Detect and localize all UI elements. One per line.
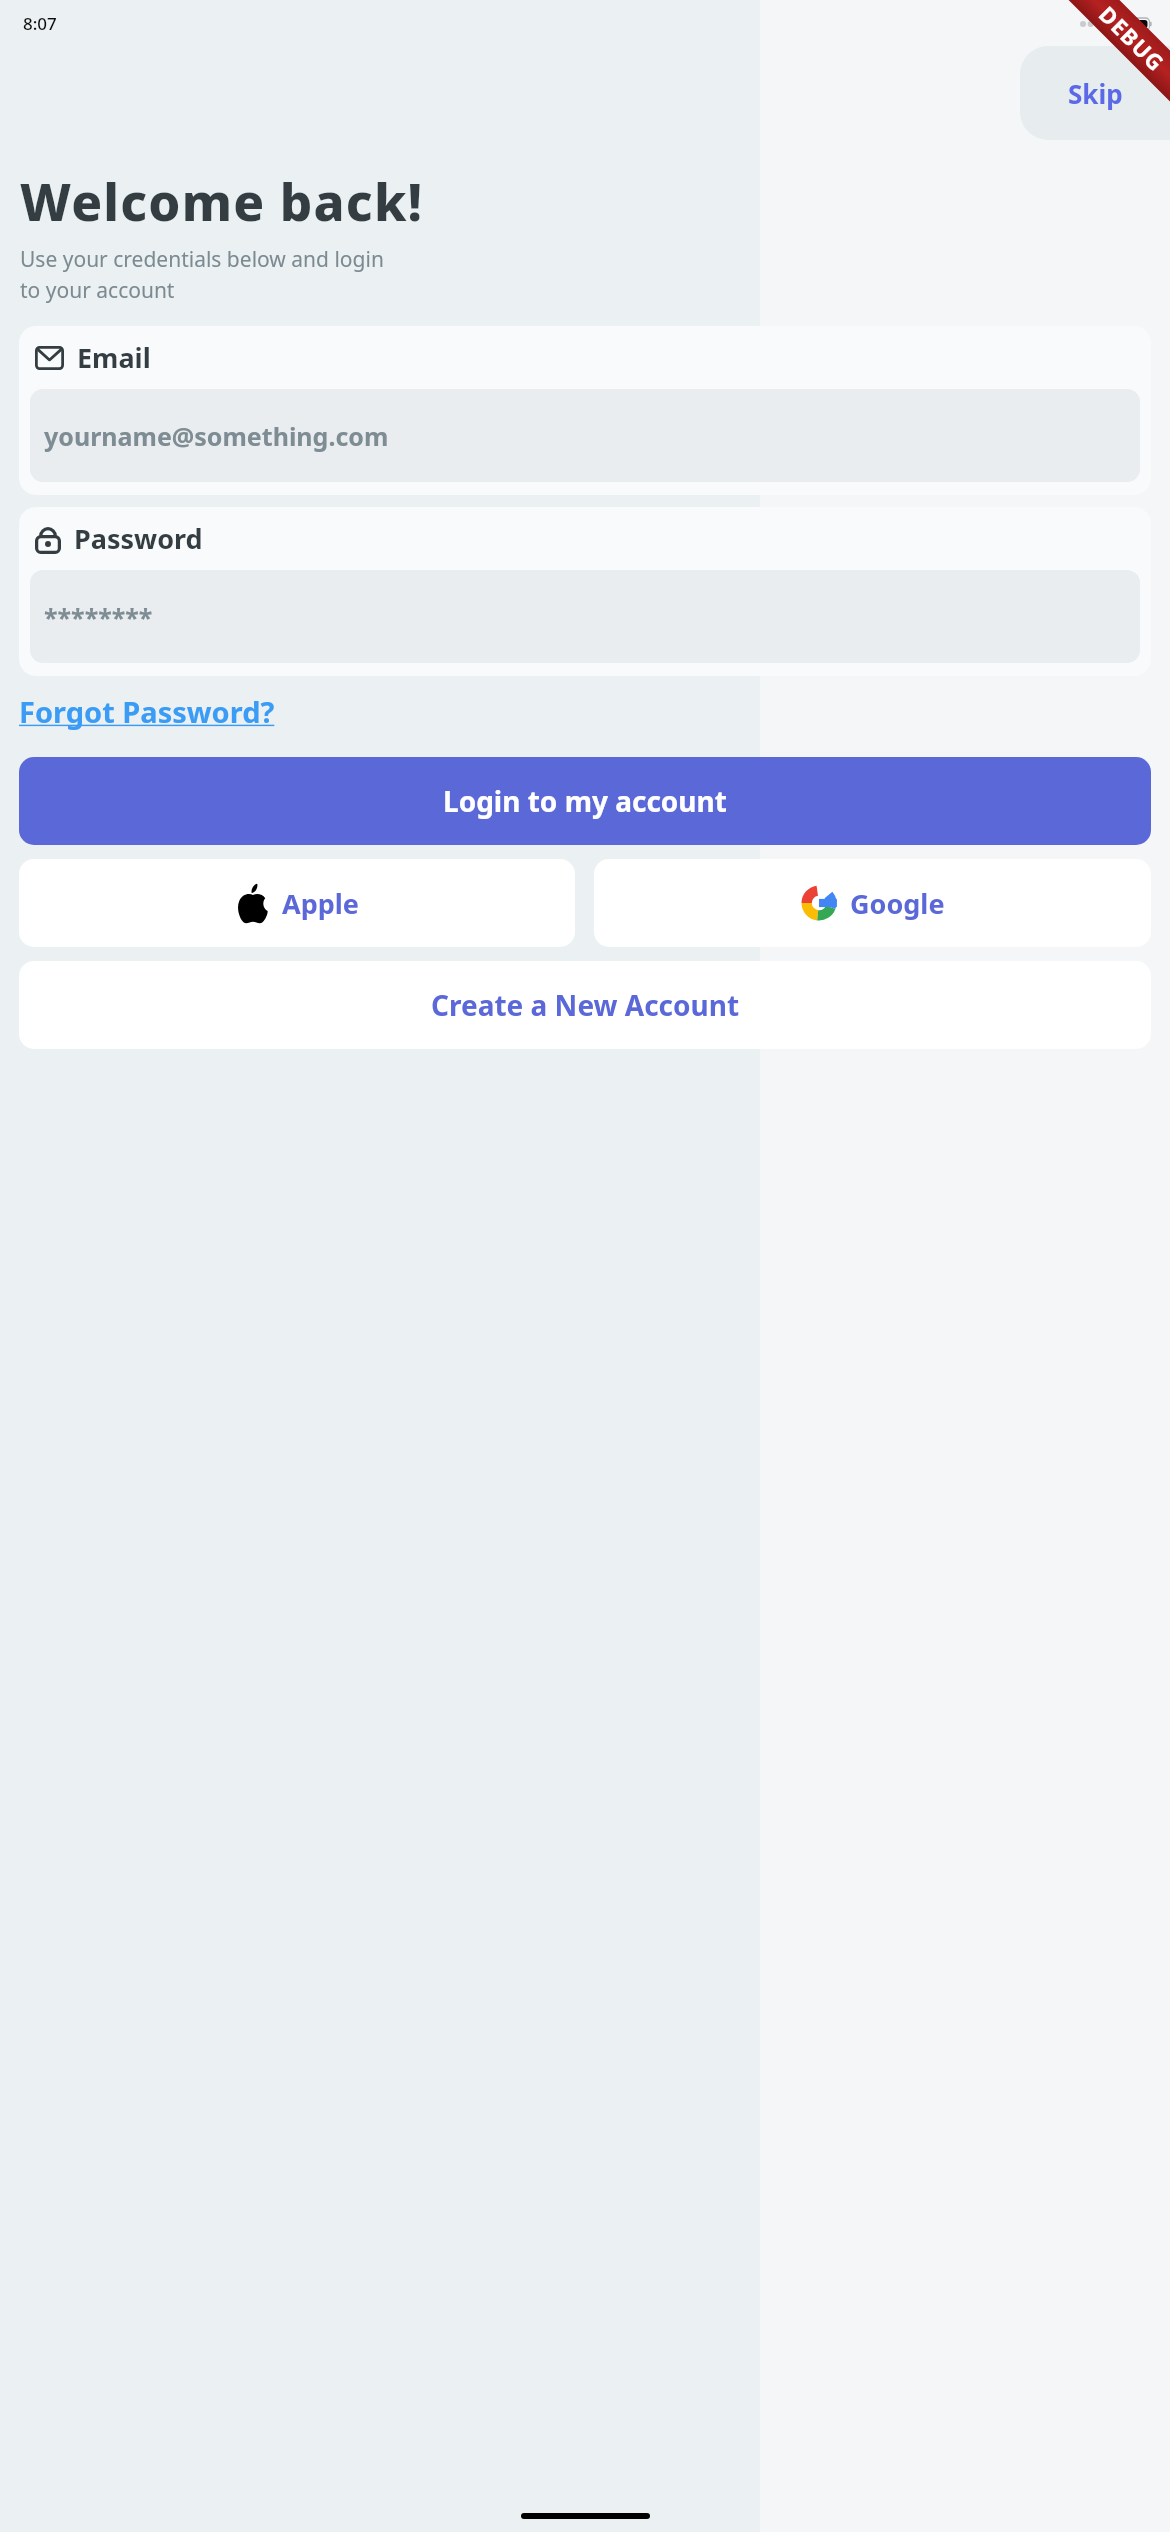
button[interactable]: Apple [19, 859, 575, 947]
staticText: Google [850, 885, 945, 922]
staticText: Skip [1068, 76, 1123, 111]
staticText: 8:07 [23, 12, 57, 35]
staticText: Password [74, 520, 203, 557]
staticText: ******** [44, 600, 153, 634]
button[interactable]: Email [19, 326, 1151, 495]
staticText: Use your credentials below and login to … [20, 245, 384, 304]
staticText: Welcome back! [20, 166, 424, 235]
other: Password [35, 524, 61, 554]
button[interactable]: Google [594, 859, 1151, 947]
staticText: yourname@something.com [44, 419, 389, 453]
staticText: Create a New Account [431, 986, 740, 1024]
staticText: Apple [282, 885, 359, 922]
button[interactable]: Forgot Password? [19, 688, 275, 735]
staticText: DEBUG [1093, 0, 1170, 78]
button[interactable]: Password [19, 507, 1151, 676]
staticText: Email [77, 339, 151, 376]
staticText: Forgot Password? [19, 692, 275, 731]
button[interactable]: Skip [1020, 46, 1170, 140]
other: Email [35, 346, 64, 370]
button[interactable]: Login to my account [19, 757, 1151, 845]
button[interactable]: Create a New Account [19, 961, 1151, 1049]
staticText: Login to my account [443, 782, 727, 820]
